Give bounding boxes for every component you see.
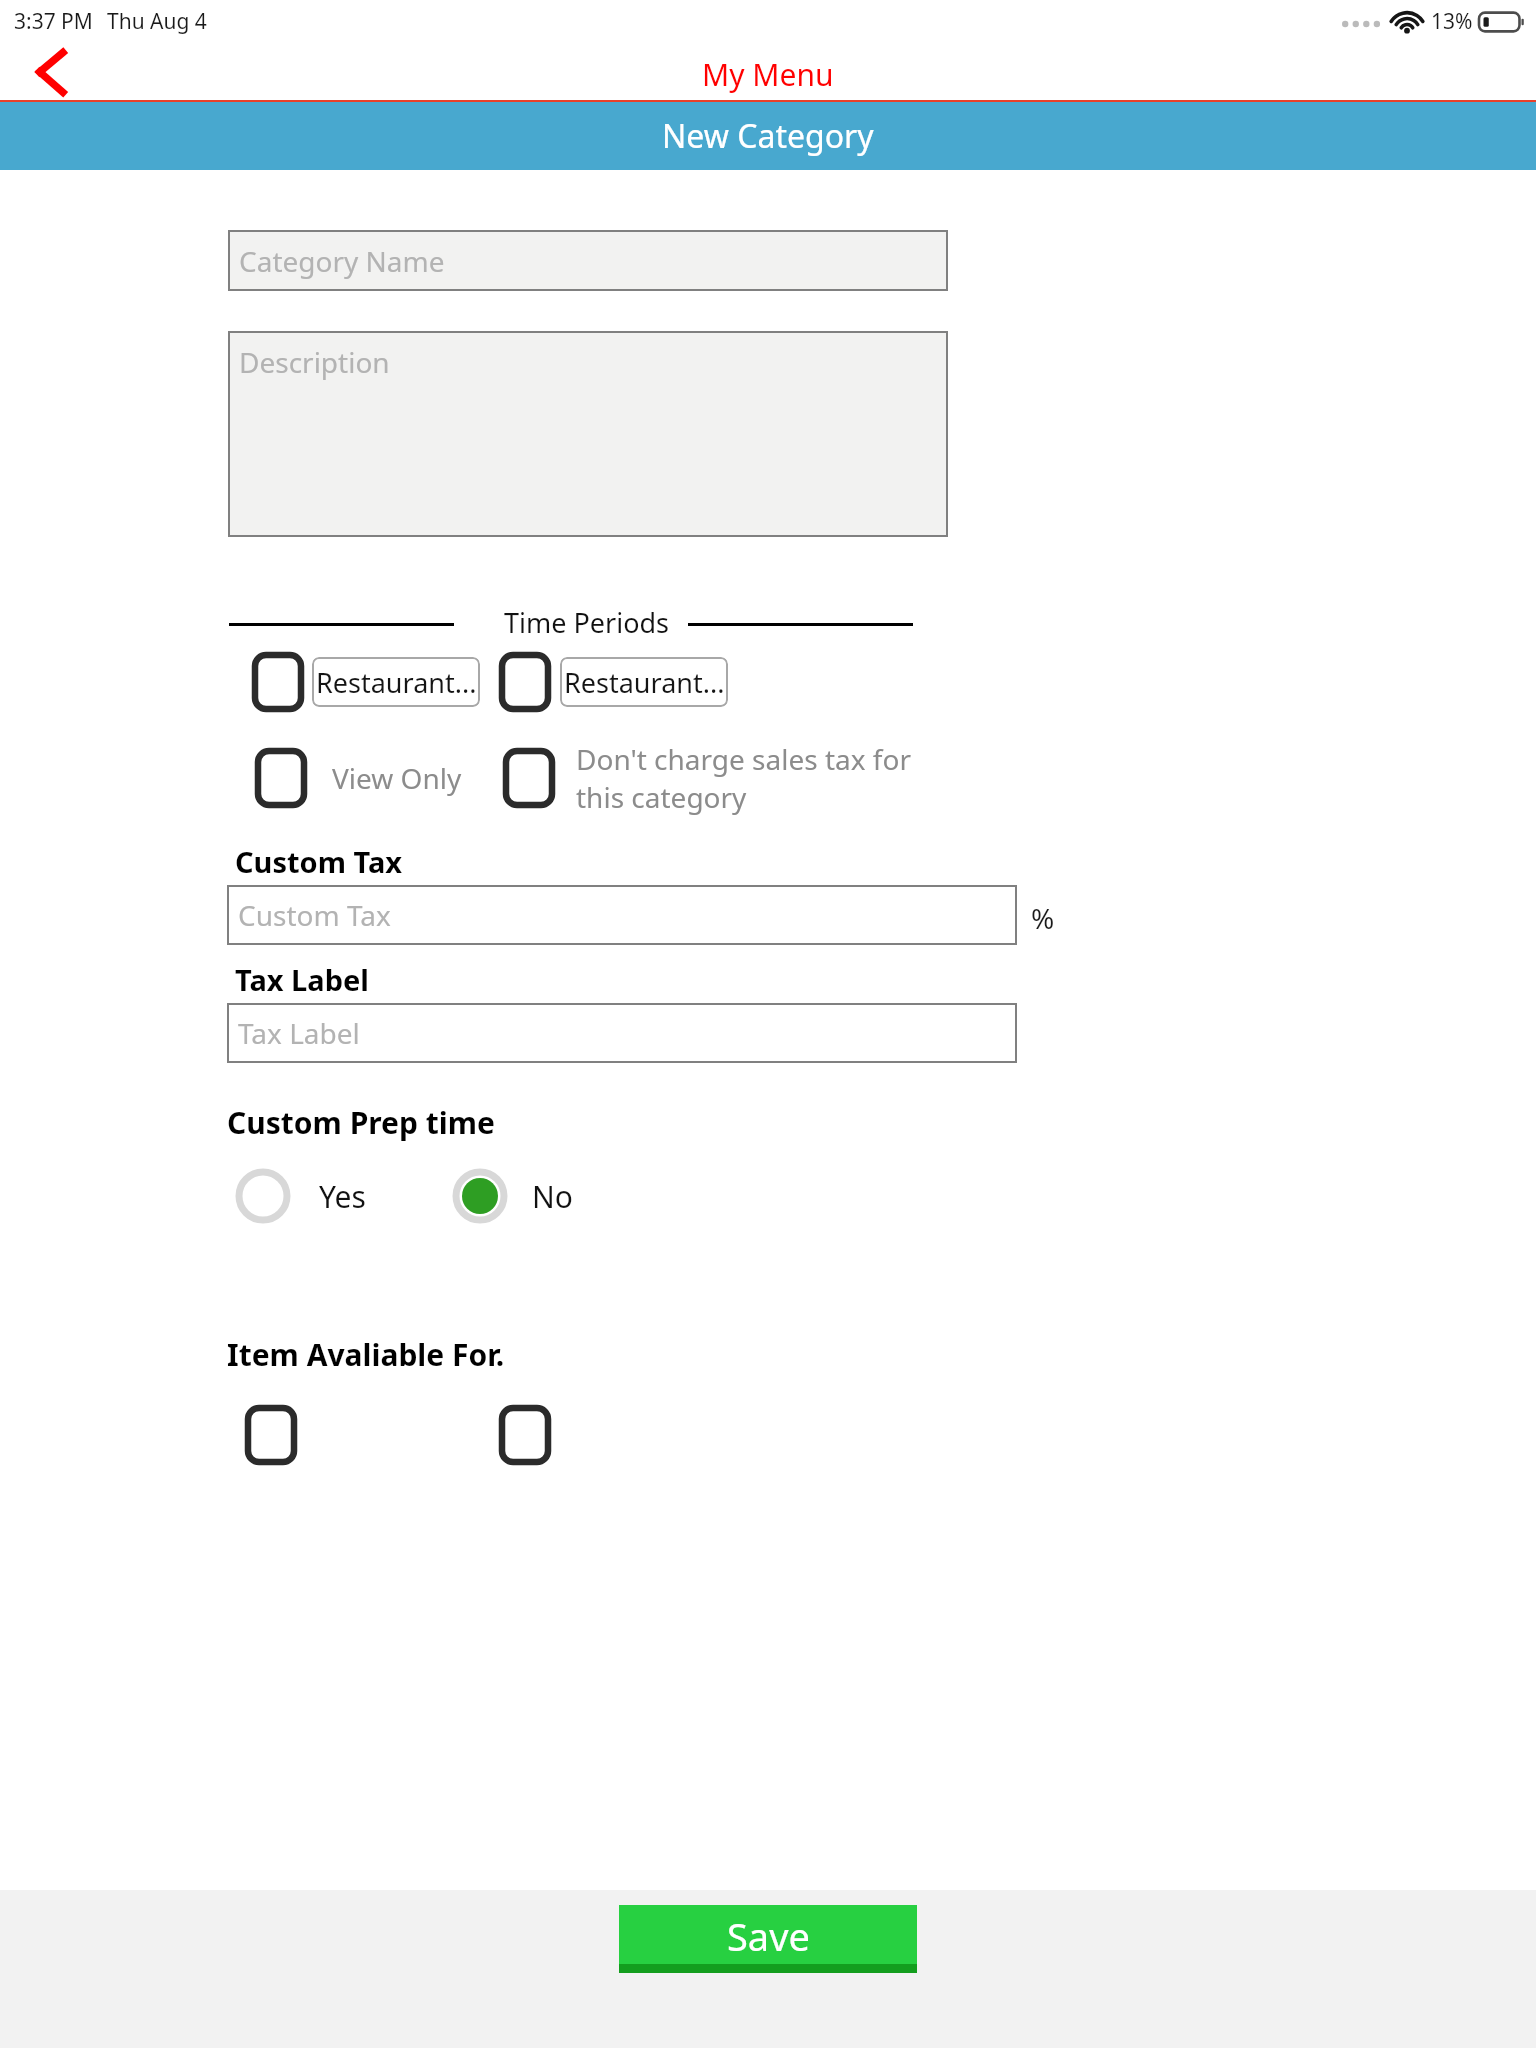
button[interactable]: Toggle xyxy=(248,1408,294,1462)
staticText: Time Periods xyxy=(504,604,670,641)
button[interactable]: Custom Tax xyxy=(227,885,1017,945)
staticText: Thu Aug 4 xyxy=(107,7,207,36)
staticText: Custom Prep time xyxy=(227,1102,495,1143)
button[interactable]: Description xyxy=(228,331,948,537)
staticText: Yes xyxy=(319,1176,366,1217)
staticText: No xyxy=(532,1176,573,1217)
button[interactable]: Tax Label xyxy=(227,1003,1017,1063)
staticText: My Menu xyxy=(702,54,834,95)
button[interactable]: Category Name xyxy=(228,230,948,291)
staticText: Restaurant... xyxy=(316,664,477,701)
button[interactable]: Not selected xyxy=(237,1170,289,1222)
staticText: Item Avaliable For. xyxy=(227,1334,505,1375)
staticText: Tax Label xyxy=(238,1014,360,1052)
button[interactable]: Not selected xyxy=(227,1170,366,1222)
staticText: Restaurant... xyxy=(564,664,725,701)
button[interactable]: Save xyxy=(619,1905,917,1973)
button[interactable]: Toggle xyxy=(502,655,548,709)
staticText: Category Name xyxy=(239,242,445,280)
staticText: 13% xyxy=(1431,7,1473,36)
button[interactable]: Selected xyxy=(454,1170,573,1222)
button[interactable]: Toggle xyxy=(258,751,304,805)
button[interactable]: Toggle xyxy=(502,1408,548,1462)
button[interactable]: Back xyxy=(20,42,84,102)
staticText: Custom Tax xyxy=(235,842,403,881)
staticText: 3:37 PM xyxy=(14,7,93,36)
staticText: View Only xyxy=(332,759,462,797)
staticText: Don't charge sales tax for xyxy=(576,740,911,778)
staticText: this category xyxy=(576,778,747,816)
button[interactable]: Restaurant... xyxy=(312,657,480,707)
staticText: Save xyxy=(727,1910,810,1962)
button[interactable]: Selected xyxy=(454,1170,506,1222)
button[interactable]: Toggle xyxy=(255,655,301,709)
button[interactable]: Restaurant... xyxy=(560,657,728,707)
staticText: Description xyxy=(239,343,390,381)
staticText: New Category xyxy=(662,114,874,158)
button[interactable]: Toggle xyxy=(506,751,552,805)
staticText: Custom Tax xyxy=(238,896,391,934)
button[interactable]: Toggle xyxy=(228,751,462,805)
staticText: % xyxy=(1031,899,1055,937)
staticText: Tax Label xyxy=(235,960,369,999)
button[interactable]: Toggle xyxy=(506,740,911,816)
